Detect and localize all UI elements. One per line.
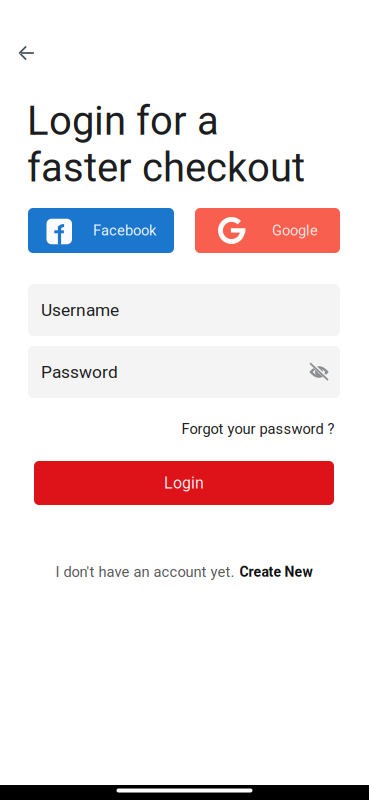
- staticText: Forgot your password ?: [181, 420, 334, 438]
- button[interactable]: Show password: [302, 355, 336, 389]
- staticText: Password: [41, 362, 118, 382]
- button[interactable]: Create New: [239, 564, 312, 580]
- staticText: Google: [272, 222, 318, 239]
- staticText: I don't have an account yet.: [55, 563, 234, 581]
- staticText: Facebook: [93, 222, 156, 239]
- button[interactable]: Login: [34, 461, 334, 505]
- staticText: Login for a faster checkout: [27, 98, 305, 191]
- staticText: Create New: [239, 564, 312, 580]
- staticText: Login: [164, 474, 204, 492]
- button[interactable]: Back: [8, 35, 44, 71]
- button[interactable]: Google: [195, 208, 340, 253]
- button[interactable]: Facebook: [28, 208, 174, 253]
- button[interactable]: Forgot your password ?: [181, 420, 334, 438]
- staticText: Username: [41, 300, 119, 320]
